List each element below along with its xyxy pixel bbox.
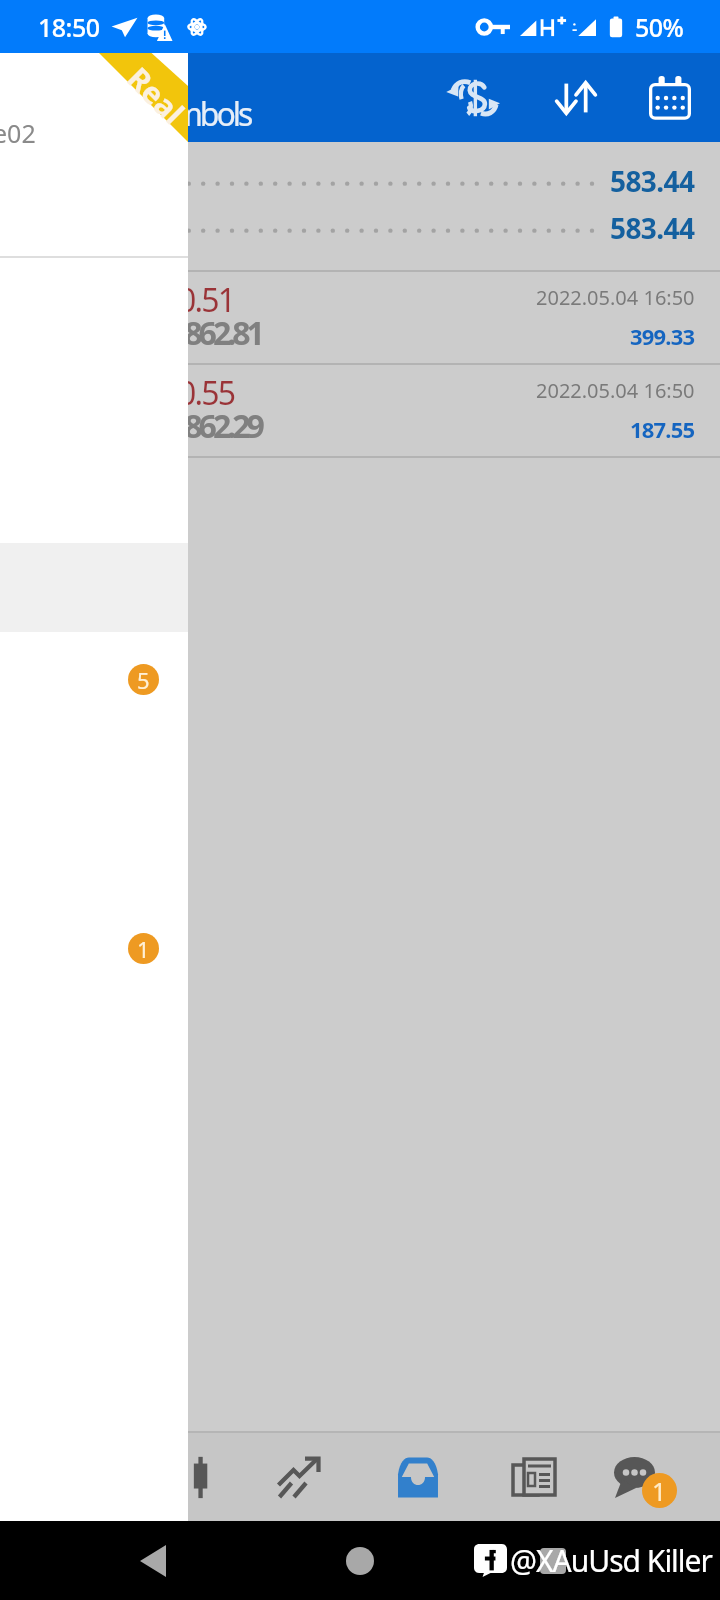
- button[interactable]: Open navigation drawer: [0, 53, 96, 142]
- staticText: 1: [652, 1474, 667, 1508]
- button[interactable]: Back: [133, 1541, 173, 1581]
- staticText: @XAuUsd Killer: [510, 1540, 712, 1581]
- staticText: 5: [137, 665, 150, 695]
- staticText: Symbols: [145, 92, 251, 136]
- button[interactable]: Recent apps: [533, 1541, 573, 1581]
- staticText: 583.44: [610, 162, 695, 200]
- button[interactable]: Quotes: [120, 1433, 240, 1521]
- staticText: 2022.05.04 16:50: [536, 377, 695, 404]
- staticText: 399.33: [630, 321, 695, 351]
- staticText: 0.55: [178, 371, 235, 415]
- button[interactable]: Chat: [600, 1433, 720, 1521]
- staticText: 50%: [635, 10, 684, 44]
- staticText: 187.55: [630, 414, 695, 444]
- staticText: e02: [0, 116, 36, 150]
- button[interactable]: 583.44: [0, 160, 720, 202]
- staticText: 0.51: [178, 278, 235, 322]
- button[interactable]: Trade: [360, 1433, 480, 1521]
- button[interactable]: 0.55: [0, 365, 720, 456]
- staticText: Real: [121, 58, 194, 131]
- staticText: 1: [137, 934, 150, 964]
- button[interactable]: News: [480, 1433, 600, 1521]
- button[interactable]: Currency exchange: [418, 53, 526, 142]
- staticText: 1862.29: [170, 404, 261, 448]
- button[interactable]: Economic calendar: [625, 53, 714, 142]
- button[interactable]: 0.51: [0, 272, 720, 363]
- button[interactable]: Sort: [526, 53, 625, 142]
- staticText: 1862.81: [170, 311, 261, 355]
- staticText: 583.44: [610, 209, 695, 247]
- button[interactable]: Home: [338, 1539, 382, 1583]
- staticText: 2022.05.04 16:50: [536, 284, 695, 311]
- staticText: 18:50: [38, 10, 100, 44]
- button[interactable]: Charts: [240, 1433, 360, 1521]
- button[interactable]: 583.44: [0, 207, 720, 249]
